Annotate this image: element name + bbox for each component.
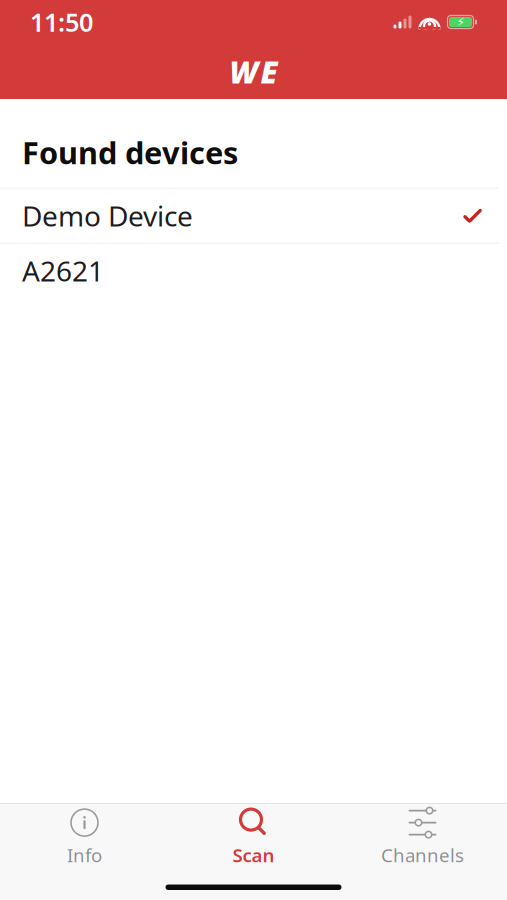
- staticText: Channels: [381, 843, 464, 867]
- staticText: Found devices: [22, 132, 238, 173]
- button[interactable]: Info: [0, 806, 169, 868]
- staticText: 11:50: [30, 5, 93, 39]
- staticText: W: [229, 51, 258, 92]
- button[interactable]: Demo Device: [0, 189, 507, 243]
- button[interactable]: Scan: [169, 806, 338, 868]
- staticText: Info: [67, 843, 102, 867]
- staticText: A2621: [22, 252, 104, 289]
- staticText: Scan: [232, 843, 274, 867]
- staticText: Demo Device: [22, 197, 193, 234]
- button[interactable]: A2621: [0, 244, 507, 298]
- staticText: ⚡︎: [456, 15, 464, 29]
- staticText: E: [260, 51, 277, 92]
- button[interactable]: Channels: [338, 806, 507, 868]
